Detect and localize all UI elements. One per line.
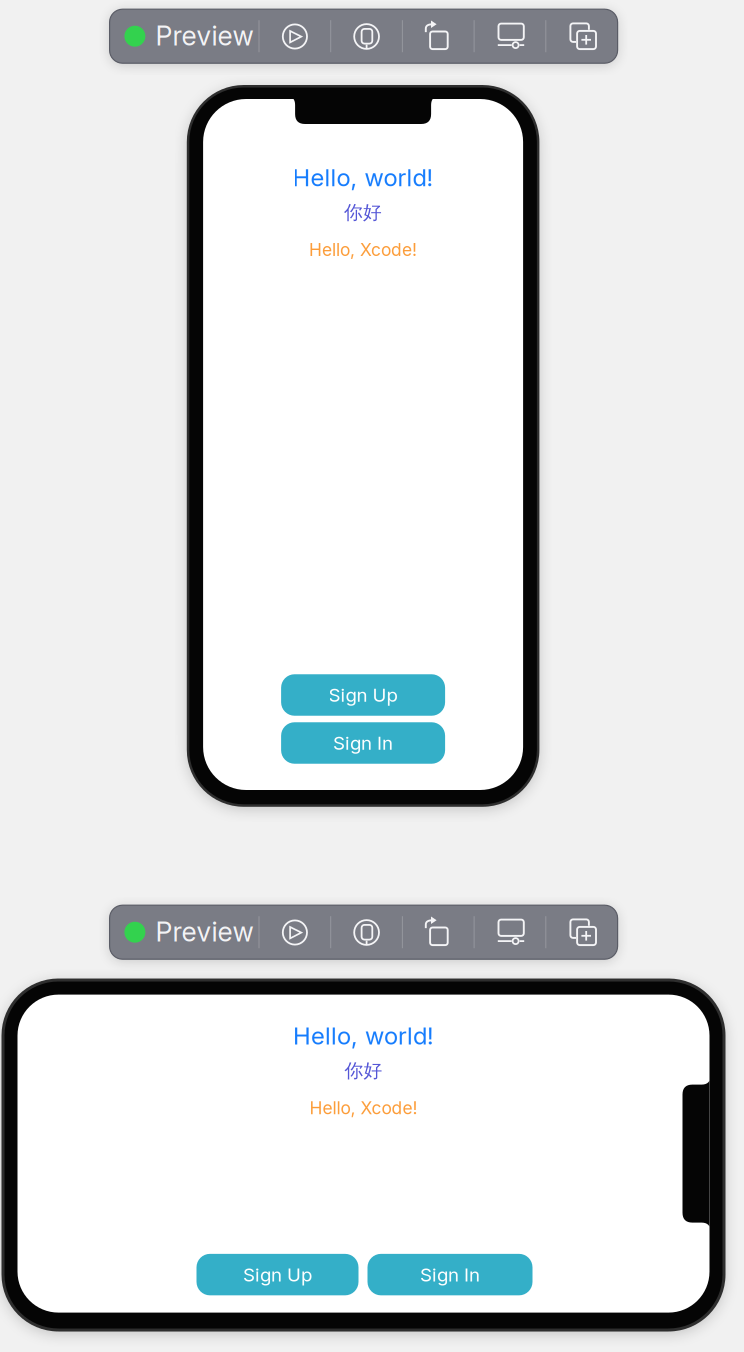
button[interactable]: Select device	[331, 9, 402, 63]
staticText: 你好	[344, 201, 382, 224]
staticText: Sign In	[333, 732, 393, 754]
button[interactable]: Preview	[110, 9, 259, 63]
staticText: Sign Up	[243, 1263, 312, 1286]
button[interactable]: Sign Up	[281, 674, 445, 716]
button[interactable]: Preview display	[474, 9, 546, 63]
staticText: Hello, Xcode!	[309, 1097, 417, 1118]
button[interactable]: Add preview	[546, 905, 618, 959]
button[interactable]: Run preview	[259, 9, 331, 63]
staticText: Hello, world!	[293, 163, 434, 192]
button[interactable]: Sign In	[281, 722, 445, 764]
button[interactable]: Sign In	[367, 1254, 532, 1295]
staticText: 你好	[344, 1059, 382, 1082]
staticText: Hello, world!	[293, 1021, 434, 1050]
button[interactable]: Select device	[331, 905, 402, 959]
staticText: Sign Up	[329, 684, 398, 706]
button[interactable]: Sign Up	[196, 1254, 358, 1295]
staticText: Preview	[155, 20, 253, 52]
staticText: Preview	[155, 916, 253, 948]
staticText: Sign In	[420, 1263, 480, 1286]
button[interactable]: Run preview	[259, 905, 331, 959]
button[interactable]: Live preview	[402, 905, 474, 959]
staticText: Hello, Xcode!	[309, 239, 417, 260]
button[interactable]: Preview display	[474, 905, 546, 959]
button[interactable]: Add preview	[546, 9, 618, 63]
button[interactable]: Preview	[110, 905, 259, 959]
button[interactable]: Live preview	[402, 9, 474, 63]
